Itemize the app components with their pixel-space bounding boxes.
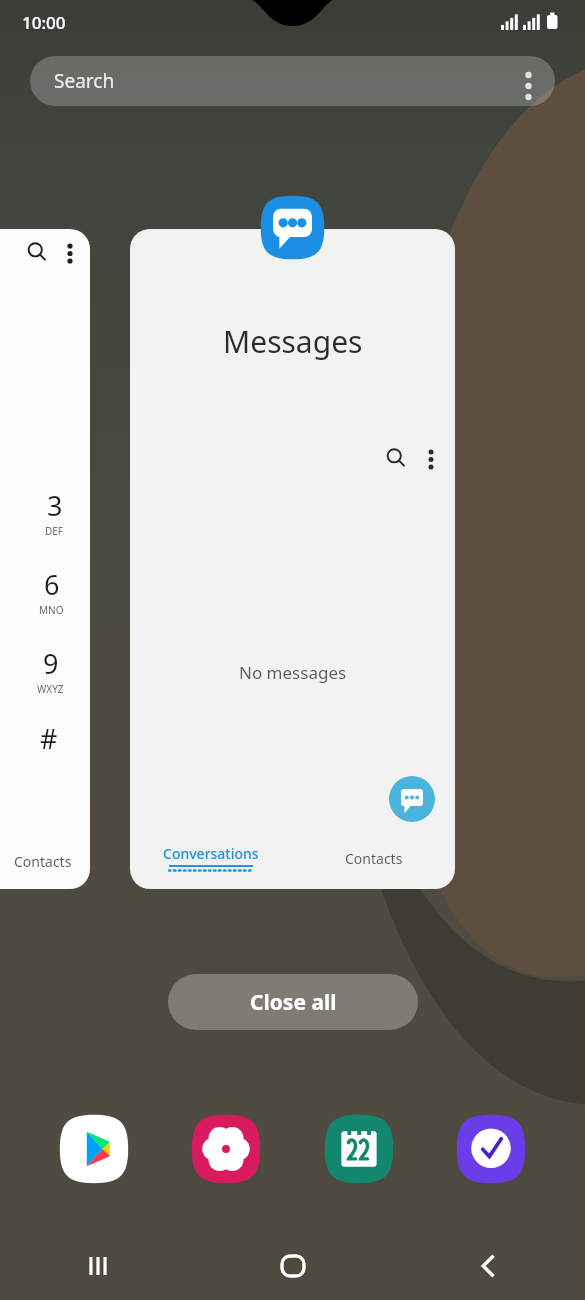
button[interactable]: 6 [39, 566, 64, 617]
other: Search [385, 447, 407, 469]
button[interactable]: 9 [37, 645, 64, 696]
button[interactable]: Search [0, 229, 90, 889]
staticText: DEF [45, 524, 64, 538]
staticText: No messages [239, 661, 347, 684]
other: More options [429, 449, 433, 467]
staticText: Contacts [345, 849, 403, 868]
staticText: Conversations [163, 844, 259, 863]
other: Search [26, 241, 48, 263]
staticText: MNO [39, 603, 64, 617]
button[interactable]: Home [195, 1232, 390, 1300]
staticText: Close all [250, 988, 337, 1017]
staticText: 10:00 [22, 11, 66, 34]
button[interactable]: New conversation [389, 776, 435, 822]
button[interactable]: Play Store [55, 1110, 133, 1188]
button[interactable]: Conversations [130, 827, 292, 889]
other: More options [68, 243, 72, 261]
button[interactable]: Gallery [187, 1110, 265, 1188]
button[interactable]: Search [30, 56, 555, 106]
staticText: 3 [47, 487, 63, 524]
button[interactable]: # [40, 720, 58, 757]
staticText: WXYZ [37, 682, 64, 696]
other: More options [526, 70, 531, 92]
staticText: Messages [223, 321, 363, 362]
button[interactable]: 3 [45, 487, 64, 538]
button[interactable]: Close all [168, 974, 418, 1030]
staticText: # [40, 720, 58, 757]
staticText: Search [54, 68, 115, 94]
button[interactable]: Contacts [292, 827, 455, 889]
button[interactable]: Clock [452, 1110, 530, 1188]
button[interactable]: Messages [130, 229, 455, 889]
button[interactable]: Back [390, 1232, 585, 1300]
button[interactable]: Messages app icon [259, 194, 326, 261]
staticText: Contacts [14, 852, 72, 871]
staticText: 6 [44, 566, 60, 603]
button[interactable]: Calendar [320, 1110, 398, 1188]
staticText: 9 [43, 645, 59, 682]
button[interactable]: Recents [0, 1232, 195, 1300]
